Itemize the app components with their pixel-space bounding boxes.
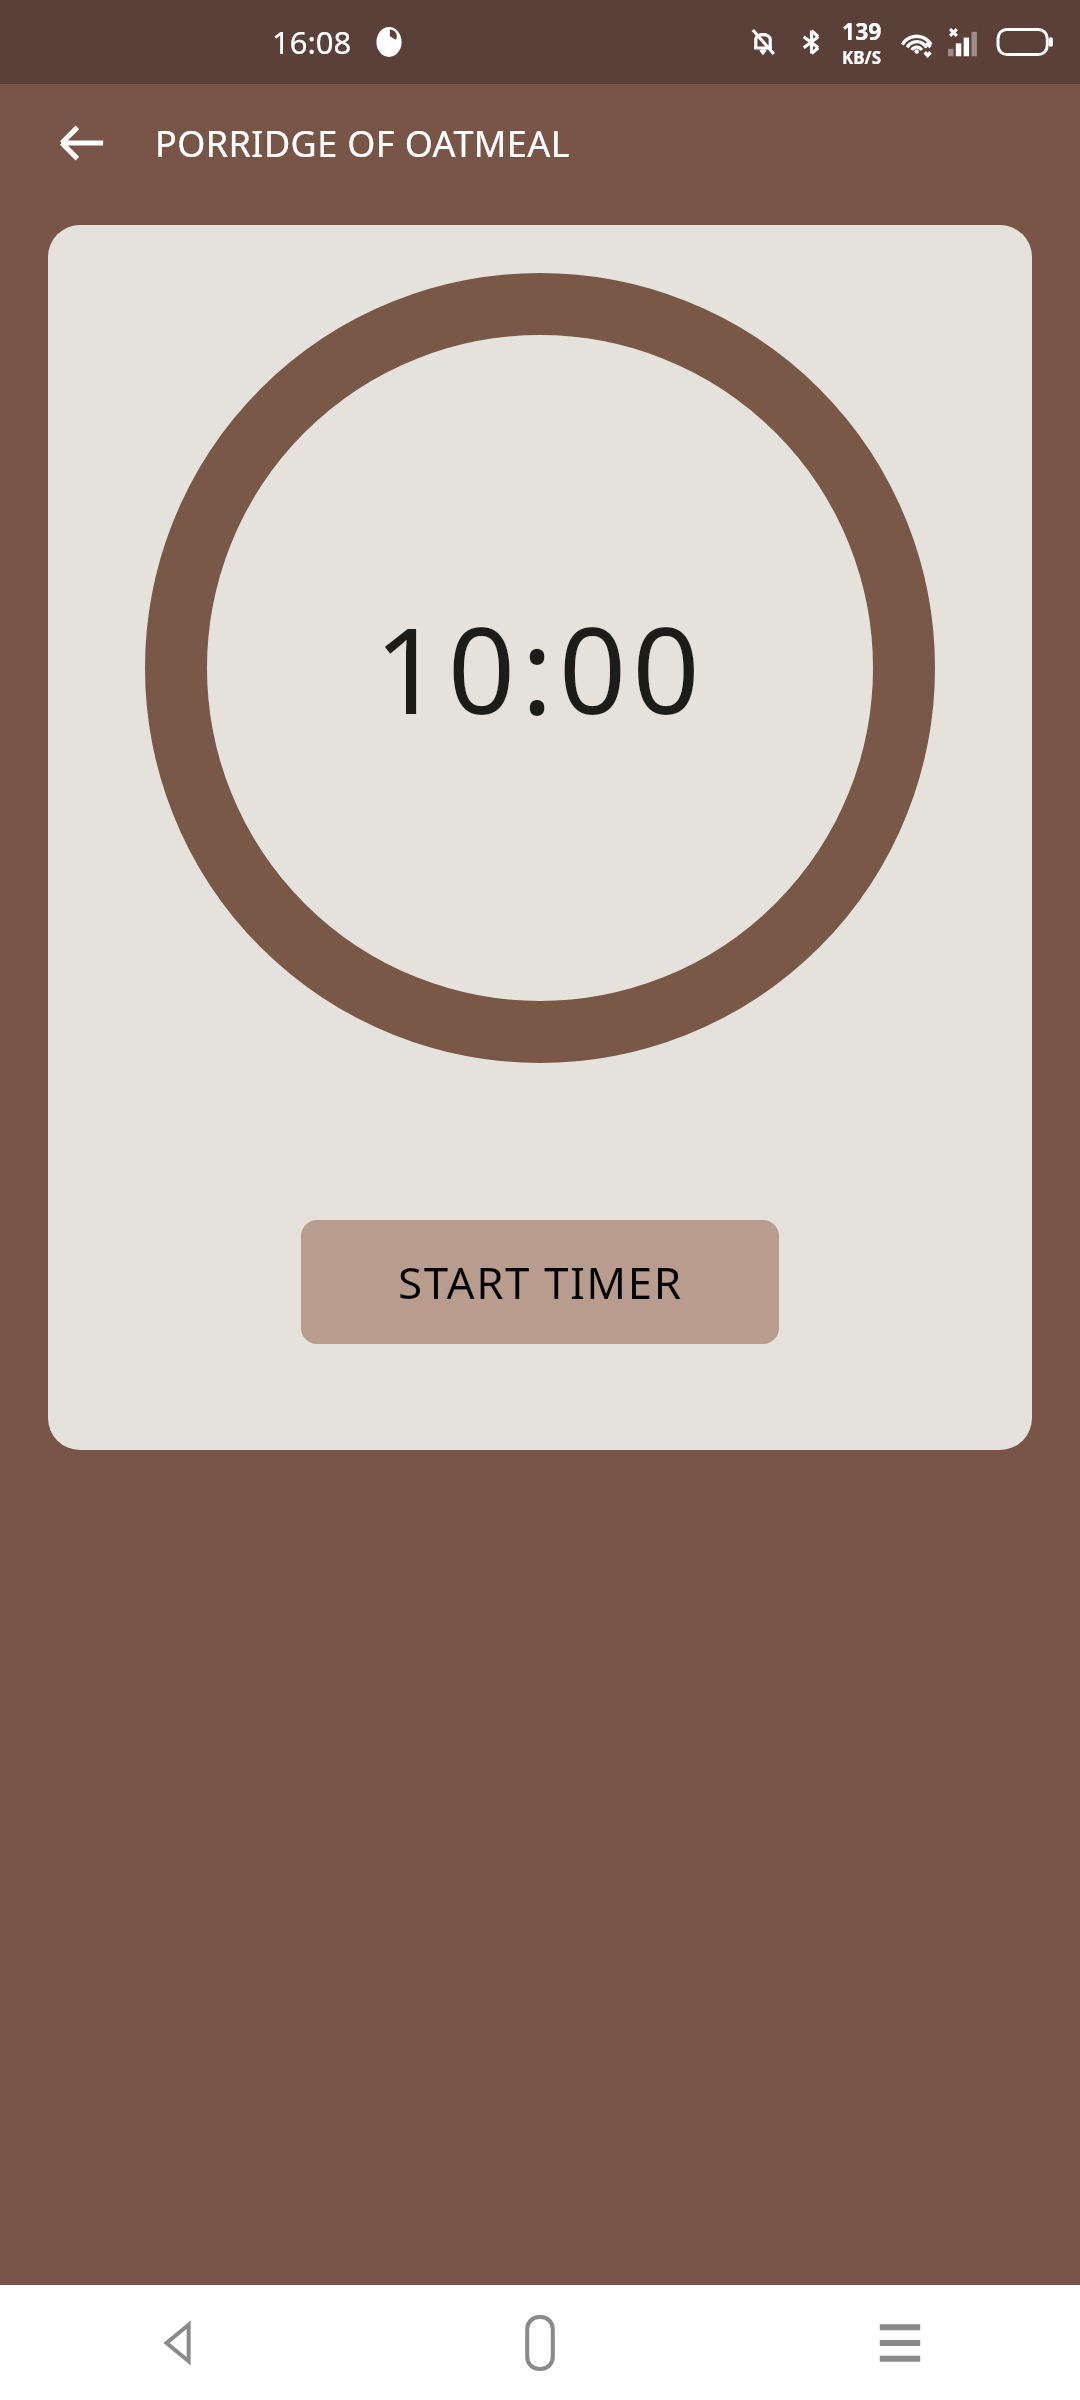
staticText: 10:00 [374,588,706,749]
staticText: KB/S [842,46,882,69]
button[interactable]: Home [360,2285,720,2400]
button[interactable]: Back [0,2285,360,2400]
staticText: 139 [842,15,882,46]
staticText: START TIMER [398,1252,683,1312]
staticText: PORRIDGE OF OATMEAL [155,119,570,168]
button[interactable]: START TIMER [301,1220,779,1344]
staticText: 16:08 [272,21,352,63]
button[interactable]: Recent apps [720,2285,1080,2400]
button[interactable]: Back [40,101,124,185]
